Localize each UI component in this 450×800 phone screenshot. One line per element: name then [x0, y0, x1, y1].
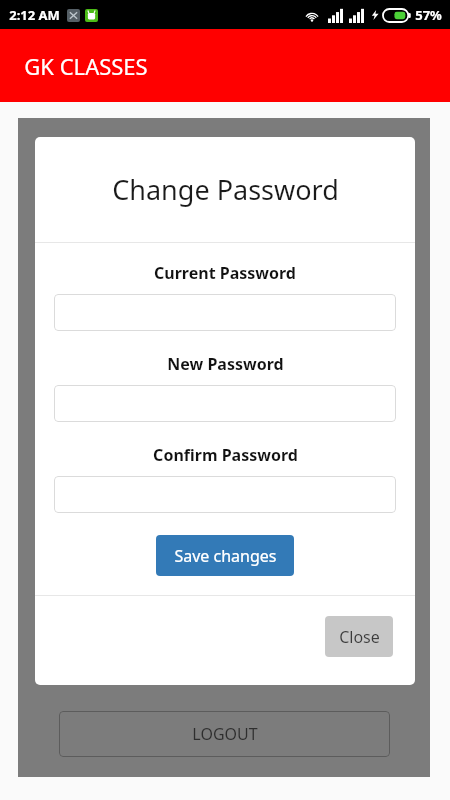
staticText: New Password — [167, 353, 284, 375]
staticText: Save changes — [174, 545, 277, 567]
staticText: Change Password — [112, 171, 339, 208]
staticText: 57% — [415, 6, 442, 24]
staticText: GK CLASSES — [24, 51, 148, 81]
staticText: Current Password — [154, 262, 296, 284]
staticText: LOGOUT — [192, 723, 258, 745]
button[interactable]: LOGOUT — [59, 711, 390, 757]
button[interactable] — [54, 294, 396, 331]
button[interactable] — [54, 476, 396, 513]
staticText: Close — [339, 626, 380, 648]
button[interactable] — [54, 385, 396, 422]
button[interactable]: Close — [325, 616, 393, 657]
button[interactable]: Save changes — [156, 535, 294, 576]
staticText: 2:12 AM — [9, 6, 60, 24]
staticText: Confirm Password — [153, 444, 298, 466]
